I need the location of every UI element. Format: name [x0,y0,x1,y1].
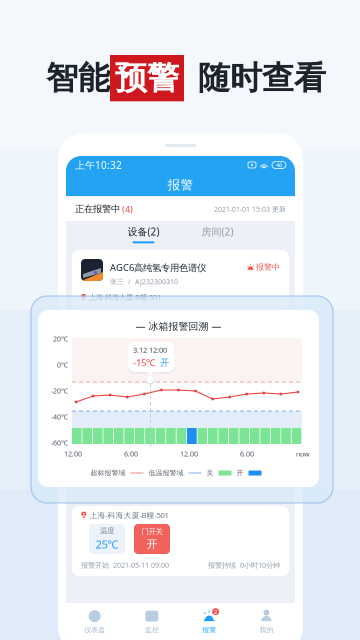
staticText: AGC6高纯氢专用色谱仪 [110,261,206,274]
staticText: 6.00 [240,449,254,459]
staticText: 房间(2) [201,225,233,238]
staticText: 上海-科海大厦-B幢-501 [89,510,168,520]
staticText: 报警中 [256,262,280,272]
staticText: 25℃ [95,537,118,552]
staticText: 张三 / AJ232300310 [110,277,178,286]
staticText: -60℃ [51,438,68,448]
staticText: 12.00 [64,449,82,459]
button[interactable]: 仪表盘 [66,603,123,640]
staticText: now [296,449,310,459]
staticText: 超标报警域 [90,469,125,477]
staticText: 开 [236,469,243,477]
staticText: 随时查看 [198,58,326,98]
staticText: 20℃ [53,334,68,344]
staticText: 12.00 [180,449,198,459]
staticText: -15℃ [133,356,156,369]
staticText: 报警 [202,626,216,634]
button[interactable]: 我的 [238,603,295,640]
staticText: 6.00 [124,449,138,459]
staticText: 报警开始 2021-05-11 09:00 [81,560,169,570]
staticText: (4) [120,203,133,215]
staticText: 预警 [115,58,179,98]
staticText: 仪表盘 [84,626,105,634]
staticText: 0℃ [57,360,68,370]
button[interactable]: 房间(2) [187,221,247,247]
button[interactable]: 监控 [123,603,180,640]
staticText: 2 [214,607,218,616]
staticText: 开 [160,357,169,368]
staticText: 设备(2) [127,225,159,238]
staticText: 报警 [167,177,193,193]
staticText: 门开关 [141,527,162,536]
staticText: 关 [206,469,213,477]
staticText: 温度 [100,526,114,536]
button[interactable]: 2 [180,603,238,640]
staticText: -20℃ [51,386,68,396]
staticText: -40℃ [51,412,68,422]
staticText: 智能 [46,58,110,98]
staticText: 正在报警中 [75,203,120,215]
staticText: 我的 [259,626,273,634]
staticText: 3.12 12:00 [133,345,167,355]
staticText: 低温报警域 [148,469,183,477]
staticText: 2021-01-01 15:03 更新 [214,204,286,214]
button[interactable]: AGC6高纯氢专用色谱仪 [72,250,289,310]
staticText: 上海-科海大厦-B幢-501 [89,292,161,302]
button[interactable]: 设备(2) [113,221,173,247]
staticText: 46 [276,161,282,169]
staticText: 监控 [145,626,159,634]
staticText: — 冰箱报警回溯 — [135,319,221,333]
staticText: 上午10:32 [75,158,122,172]
staticText: 报警持续 0小时10分钟 [208,560,280,570]
staticText: 开 [146,537,157,551]
